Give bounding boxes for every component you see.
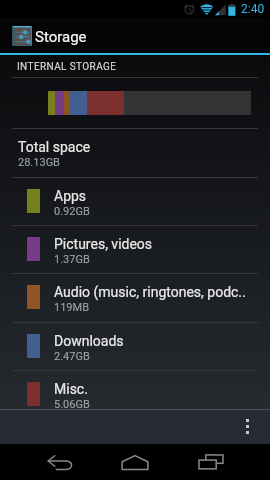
button[interactable]: Recent apps: [187, 444, 235, 480]
button[interactable]: Apps: [0, 177, 270, 225]
button[interactable]: Back: [36, 444, 84, 480]
staticText: 0.92GB: [54, 205, 90, 218]
button[interactable]: Misc.: [0, 370, 270, 418]
staticText: 2:40: [241, 2, 265, 16]
staticText: Audio (music, ringtones, podc..: [54, 284, 260, 300]
button[interactable]: Home: [111, 444, 159, 480]
button[interactable]: More options: [234, 409, 260, 444]
staticText: Storage: [35, 28, 87, 46]
staticText: INTERNAL STORAGE: [17, 61, 117, 73]
button[interactable]: Pictures, videos: [0, 225, 270, 273]
button[interactable]: Total space: [0, 128, 270, 176]
button[interactable]: Audio (music, ringtones, podc..: [0, 273, 270, 321]
staticText: Misc.: [54, 381, 260, 397]
staticText: 5.06GB: [54, 398, 90, 411]
button[interactable]: Downloads: [0, 322, 270, 370]
staticText: Apps: [54, 188, 260, 204]
staticText: 1.37GB: [54, 253, 90, 266]
staticText: Downloads: [54, 333, 260, 349]
staticText: 28.13GB: [18, 156, 60, 169]
staticText: Total space: [18, 139, 91, 155]
staticText: 119MB: [54, 301, 90, 314]
staticText: Pictures, videos: [54, 236, 260, 252]
staticText: 2.47GB: [54, 350, 90, 363]
